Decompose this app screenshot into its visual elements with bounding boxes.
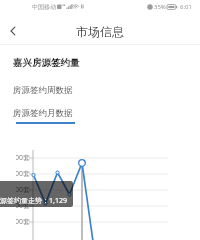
- staticText: 3000套: [7, 153, 31, 163]
- staticText: 房源签约量走势：1,129: [0, 196, 67, 206]
- staticText: 6:01: [180, 3, 192, 11]
- button[interactable]: 房源签约月数据: [13, 108, 73, 119]
- staticText: 嘉兴房源签约量: [13, 57, 80, 69]
- staticText: 35%: [154, 3, 166, 11]
- staticText: 3000套: [7, 169, 31, 179]
- staticText: 房源签约月数据: [13, 108, 73, 119]
- staticText: 3000套: [7, 185, 31, 195]
- staticText: 3000套: [7, 201, 31, 211]
- staticText: 中国移动: [32, 3, 56, 11]
- button[interactable]: 房源签约周数据: [13, 85, 73, 96]
- button[interactable]: Back: [0, 18, 26, 44]
- staticText: 3000套: [7, 217, 31, 227]
- staticText: 房源签约周数据: [13, 85, 73, 96]
- staticText: 市场信息: [76, 24, 124, 39]
